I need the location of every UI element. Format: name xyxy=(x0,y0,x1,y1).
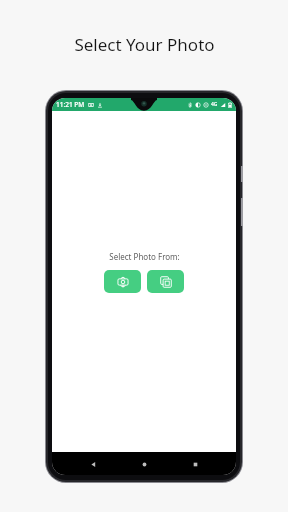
button[interactable]: Choose from gallery xyxy=(147,270,184,293)
staticText: 4G xyxy=(211,101,218,108)
button[interactable]: Take photo with camera xyxy=(104,270,141,293)
staticText: 11:21 PM xyxy=(56,100,85,109)
staticText: Select Photo From: xyxy=(109,251,180,262)
button[interactable]: Home xyxy=(134,454,154,474)
staticText: Select Your Photo xyxy=(74,33,215,56)
button[interactable]: Recent apps xyxy=(185,454,205,474)
button[interactable]: Back xyxy=(83,454,103,474)
